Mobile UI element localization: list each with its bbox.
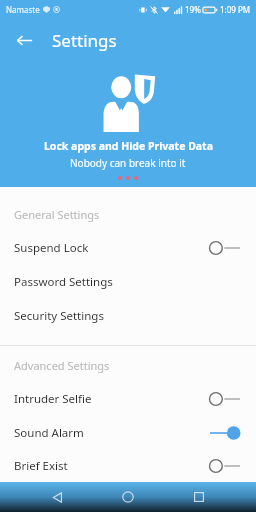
- staticText: Lock apps and Hide Private Data: [44, 139, 213, 153]
- staticText: Suspend Lock: [14, 240, 89, 256]
- button[interactable]: Home: [114, 483, 142, 511]
- button[interactable]: Toggle off: [208, 389, 242, 409]
- button[interactable]: Password Settings: [0, 265, 256, 299]
- button[interactable]: Back: [43, 483, 71, 511]
- staticText: Security Settings: [14, 308, 104, 324]
- button[interactable]: Toggle off: [208, 456, 242, 476]
- staticText: Namaste: [6, 4, 40, 15]
- staticText: Settings: [52, 29, 117, 52]
- staticText: Nobody can break into it: [70, 156, 186, 170]
- button[interactable]: Suspend Lock: [0, 231, 256, 265]
- staticText: Sound Alarm: [14, 425, 84, 441]
- button[interactable]: Brief Exist: [0, 450, 256, 482]
- button[interactable]: Intruder Selfie: [0, 382, 256, 416]
- staticText: 1:09 PM: [220, 4, 251, 15]
- staticText: Password Settings: [14, 274, 113, 290]
- button[interactable]: Security Settings: [0, 299, 256, 333]
- staticText: 19%: [185, 4, 201, 15]
- staticText: General Settings: [14, 207, 100, 222]
- button[interactable]: Back: [8, 24, 40, 56]
- button[interactable]: Recents: [185, 483, 213, 511]
- button[interactable]: Sound Alarm: [0, 416, 256, 450]
- button[interactable]: Toggle off: [208, 238, 242, 258]
- button[interactable]: Toggle on: [208, 423, 242, 443]
- staticText: Brief Exist: [14, 458, 68, 474]
- staticText: Intruder Selfie: [14, 391, 92, 407]
- staticText: Advanced Settings: [14, 358, 110, 373]
